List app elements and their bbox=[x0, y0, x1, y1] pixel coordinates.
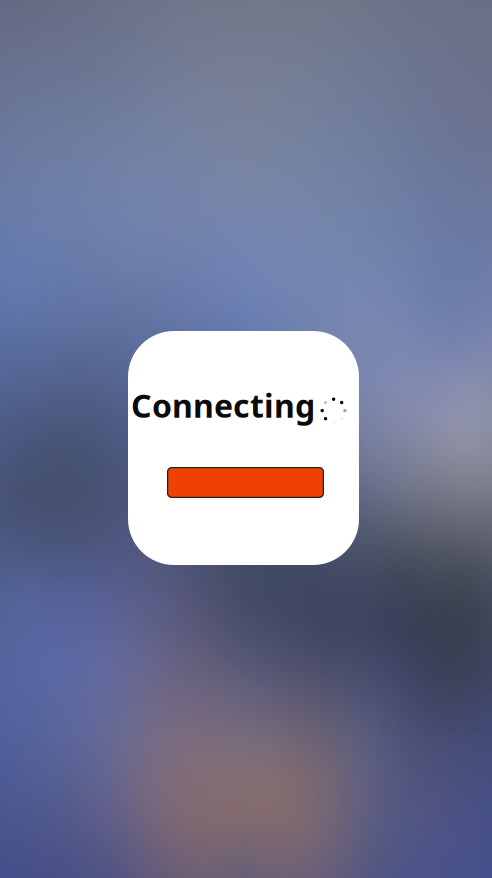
staticText: Connecting bbox=[131, 384, 315, 426]
button[interactable]: Connecting progress bbox=[167, 467, 324, 498]
